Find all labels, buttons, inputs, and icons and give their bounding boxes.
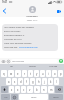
button[interactable]: e: [15, 70, 21, 77]
staticText: b: [36, 88, 38, 92]
staticText: l: [56, 80, 57, 84]
staticText: Today 10:12: [2, 19, 62, 22]
button[interactable]: Text Message: [11, 59, 58, 63]
staticText: w: [10, 72, 13, 76]
staticText: Messages: [26, 14, 38, 17]
button[interactable]: k: [48, 78, 53, 85]
staticText: n: [43, 88, 45, 92]
staticText: j: [44, 80, 45, 84]
staticText: Estimated delivery is: [4, 34, 40, 37]
button[interactable]: n: [41, 86, 47, 93]
staticText: v: [29, 88, 31, 92]
button[interactable]: a: [6, 78, 11, 85]
button[interactable]: space: [19, 94, 48, 100]
button[interactable]: c: [21, 86, 26, 93]
staticText: y: [36, 72, 38, 76]
staticText: h: [38, 80, 40, 84]
button[interactable]: t: [28, 70, 33, 77]
staticText: Text Message: [12, 60, 25, 63]
staticText: s: [14, 80, 16, 84]
staticText: Thursday by 8 PM.: [4, 38, 35, 41]
button[interactable]: track.example.com: [19, 46, 38, 49]
staticText: e: [17, 72, 19, 76]
button[interactable]: z: [9, 86, 14, 93]
button[interactable]: Your recent order has shipped: [2, 24, 58, 51]
staticText: return: [53, 96, 59, 99]
staticText: 9:41: [2, 0, 8, 4]
staticText: and is on its way.: [4, 30, 36, 33]
button[interactable]: Back: [1, 7, 7, 15]
button[interactable]: f: [24, 78, 29, 85]
staticText: 123: [4, 96, 8, 99]
button[interactable]: Emoji: [11, 94, 18, 100]
staticText: k: [50, 80, 52, 84]
button[interactable]: p: [58, 70, 63, 77]
staticText: space: [31, 96, 37, 99]
button[interactable]: o: [52, 70, 57, 77]
staticText: track.example.com: [19, 46, 38, 49]
staticText: o: [54, 72, 56, 76]
staticText: c: [23, 88, 25, 92]
button[interactable]: m: [48, 86, 54, 93]
button[interactable]: Backspace: [55, 86, 63, 93]
button[interactable]: b: [34, 86, 40, 93]
button[interactable]: Camera: [1, 59, 5, 63]
button[interactable]: g: [30, 78, 35, 85]
staticText: r: [24, 72, 26, 76]
staticText: g: [32, 80, 34, 84]
staticText: x: [17, 88, 19, 92]
button[interactable]: Shift: [1, 86, 8, 93]
staticText: i: [48, 72, 49, 76]
button[interactable]: y: [34, 70, 39, 77]
staticText: Track your package anytime: [4, 42, 52, 45]
button[interactable]: Messages: [26, 5, 38, 17]
button[interactable]: d: [18, 78, 23, 85]
button[interactable]: l: [54, 78, 59, 85]
staticText: Thanks: [29, 65, 36, 68]
button[interactable]: x: [15, 86, 20, 93]
staticText: u: [42, 72, 44, 76]
staticText: q: [3, 72, 5, 76]
button[interactable]: h: [36, 78, 41, 85]
button[interactable]: I can see: [43, 64, 64, 69]
button[interactable]: Send: [59, 59, 63, 63]
button[interactable]: Video call: [56, 7, 62, 15]
staticText: m: [50, 88, 53, 92]
staticText: z: [11, 88, 13, 92]
button[interactable]: Apps: [6, 59, 10, 63]
button[interactable]: s: [12, 78, 17, 85]
button[interactable]: 123: [1, 94, 10, 100]
staticText: p: [60, 72, 62, 76]
staticText: f: [26, 80, 27, 84]
button[interactable]: u: [40, 70, 45, 77]
button[interactable]: Thanks: [22, 64, 43, 69]
staticText: d: [20, 80, 22, 84]
button[interactable]: r: [22, 70, 27, 77]
staticText: a: [8, 80, 10, 84]
staticText: using the link:: [4, 46, 18, 49]
staticText: I can see: [49, 65, 58, 68]
button[interactable]: j: [42, 78, 47, 85]
button[interactable]: q: [1, 70, 7, 77]
staticText: t: [30, 72, 31, 76]
button[interactable]: return: [49, 94, 63, 100]
button[interactable]: i: [46, 70, 51, 77]
staticText: I'm: [10, 65, 13, 68]
button[interactable]: w: [8, 70, 14, 77]
button[interactable]: I'm: [0, 64, 22, 69]
button[interactable]: v: [27, 86, 33, 93]
staticText: Your recent order has shipped: [4, 26, 56, 29]
